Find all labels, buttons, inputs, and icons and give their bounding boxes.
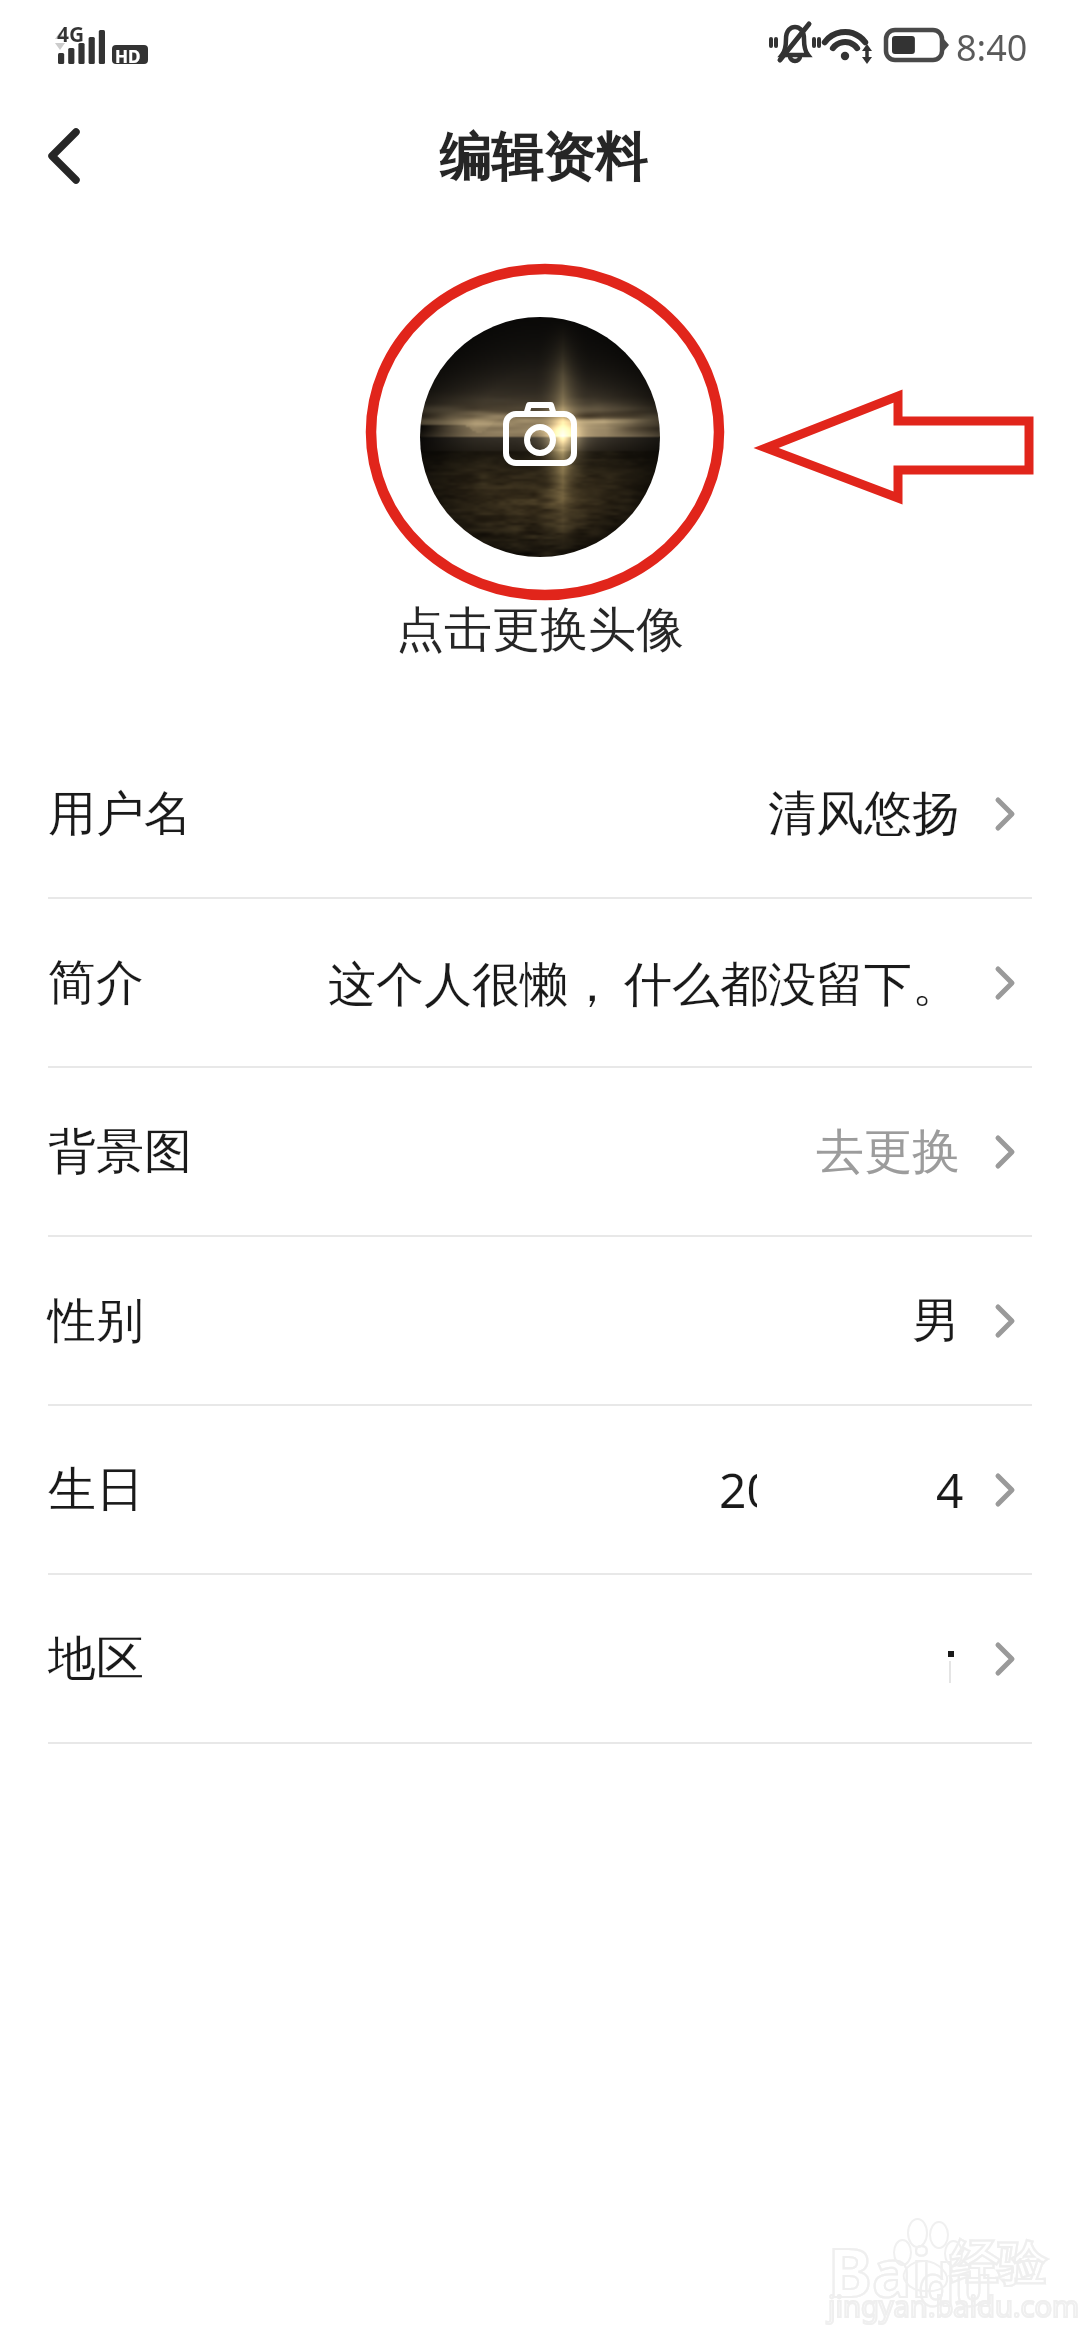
button[interactable]: 地区 bbox=[0, 1575, 1080, 1742]
button[interactable]: 性别 bbox=[0, 1237, 1080, 1404]
staticText: 生日 bbox=[48, 1460, 144, 1520]
staticText: 点击更换头像 bbox=[396, 600, 684, 660]
staticText: 去更换 bbox=[816, 1122, 960, 1182]
staticText: 地区 bbox=[48, 1629, 144, 1689]
staticText: 背景图 bbox=[48, 1122, 192, 1182]
button[interactable]: 用户名 bbox=[0, 730, 1080, 897]
button[interactable]: 生日 bbox=[0, 1406, 1080, 1573]
staticText: Bai bbox=[828, 2226, 932, 2316]
staticText: 4G bbox=[57, 20, 85, 49]
staticText: HD bbox=[115, 45, 141, 68]
staticText: 男 bbox=[912, 1291, 960, 1351]
staticText: 8:40 bbox=[956, 23, 1028, 72]
button[interactable]: 简介 bbox=[0, 899, 1080, 1066]
staticText: 4 bbox=[936, 1457, 964, 1522]
staticText: 清风悠扬 bbox=[768, 784, 960, 844]
staticText: 20 bbox=[719, 1457, 774, 1522]
staticText: 简介 bbox=[48, 953, 144, 1013]
button[interactable]: 背景图 bbox=[0, 1068, 1080, 1235]
staticText: du bbox=[918, 2244, 993, 2323]
staticText: 编辑资料 bbox=[439, 125, 647, 191]
button[interactable]: Back bbox=[14, 100, 124, 210]
button[interactable]: 点击更换头像 bbox=[370, 262, 720, 657]
staticText: 用户名 bbox=[48, 784, 192, 844]
staticText: 性别 bbox=[48, 1291, 144, 1351]
staticText: jingyan.baidu.com bbox=[828, 2286, 1080, 2325]
staticText: 经验 bbox=[950, 2234, 1046, 2294]
staticText: 这个人很懒， 什么都没留下。 bbox=[328, 950, 960, 1016]
